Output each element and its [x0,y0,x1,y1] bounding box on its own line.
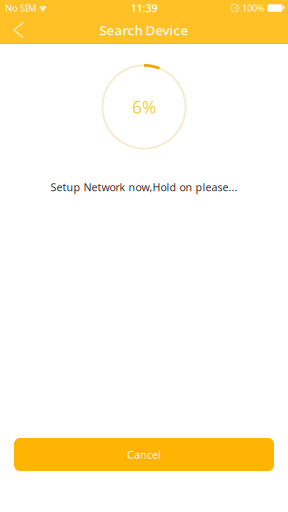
staticText: Search Device [99,21,188,39]
staticText: 100% [242,2,265,14]
staticText: Setup Network now,Hold on please... [50,180,237,194]
button[interactable]: Back [0,16,38,44]
button[interactable]: Cancel [14,438,274,471]
staticText: 6% [132,95,156,118]
staticText: Cancel [127,447,161,462]
staticText: 11:39 [130,1,157,15]
staticText: No SIM [5,2,36,14]
